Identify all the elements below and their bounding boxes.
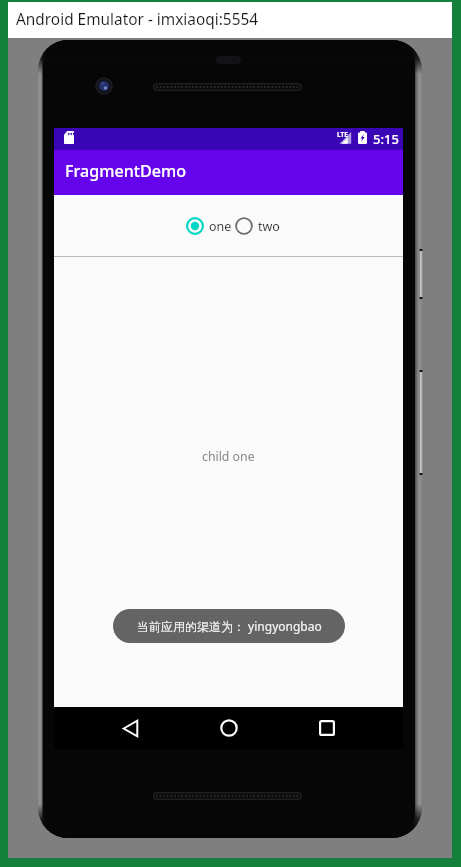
staticText: 当前应用的渠道为： yingyongbao xyxy=(137,618,322,634)
staticText: child one xyxy=(202,448,255,465)
staticText: two xyxy=(258,218,280,235)
button[interactable]: two xyxy=(235,217,280,235)
staticText: 5:15 xyxy=(373,130,399,148)
button[interactable]: Recent apps xyxy=(305,707,349,749)
staticText: LTE xyxy=(337,130,348,139)
button[interactable]: Back xyxy=(108,707,152,749)
staticText: Android Emulator - imxiaoqi:5554 xyxy=(16,9,259,30)
staticText: FragmentDemo xyxy=(65,160,186,182)
button[interactable]: one xyxy=(186,217,232,235)
button[interactable]: Home xyxy=(207,707,251,749)
staticText: one xyxy=(209,218,232,235)
